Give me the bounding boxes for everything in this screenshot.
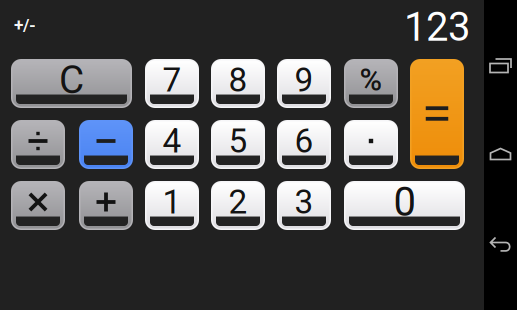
button[interactable]: 9	[277, 59, 331, 108]
button[interactable]: Back	[484, 193, 517, 297]
staticText: %	[359, 62, 382, 98]
staticText: 5	[228, 121, 247, 161]
button[interactable]: 2	[211, 181, 265, 230]
staticText: +/-	[14, 15, 36, 35]
staticText: 4	[162, 121, 181, 161]
button[interactable]	[79, 120, 133, 169]
staticText: 8	[228, 60, 247, 100]
button[interactable]: 8	[211, 59, 265, 108]
button[interactable]: 4	[145, 120, 199, 169]
button[interactable]: %	[344, 59, 398, 108]
button[interactable]	[11, 181, 65, 230]
button[interactable]: 1	[145, 181, 199, 230]
button[interactable]: 3	[277, 181, 331, 230]
button[interactable]: Recents	[484, 14, 517, 117]
staticText: 123	[404, 4, 470, 50]
button[interactable]	[344, 120, 398, 169]
button[interactable]	[11, 120, 65, 169]
staticText: 0	[393, 179, 415, 225]
button[interactable]: C	[11, 59, 132, 108]
staticText: 3	[294, 182, 313, 222]
staticText: 6	[294, 121, 313, 161]
button[interactable]	[79, 181, 133, 230]
staticText: C	[59, 57, 84, 103]
button[interactable]: 6	[277, 120, 331, 169]
staticText: 1	[162, 182, 181, 222]
button[interactable]: Home	[484, 102, 517, 205]
button[interactable]: 0	[344, 181, 465, 230]
staticText: 7	[162, 60, 181, 100]
button[interactable]	[410, 59, 464, 169]
staticText: 9	[294, 60, 313, 100]
button[interactable]: 7	[145, 59, 199, 108]
button[interactable]: 5	[211, 120, 265, 169]
staticText: 2	[228, 182, 247, 222]
